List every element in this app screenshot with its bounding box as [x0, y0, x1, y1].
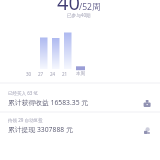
button[interactable]: 已经买入 63 笔 [0, 87, 160, 111]
other: Withdraw detail [141, 126, 153, 138]
staticText: 27 [38, 71, 44, 77]
staticText: 累计获得收益 16583.35 元 [8, 98, 89, 107]
staticText: /52周 [79, 1, 101, 13]
staticText: 待领 29 自动复投 [8, 117, 43, 123]
button[interactable]: 待领 29 自动复投 [0, 114, 160, 138]
staticText: 累计提现 3307888 元 [8, 125, 73, 134]
staticText: 本周 [76, 71, 85, 77]
staticText: 已经买入 63 笔 [8, 90, 38, 96]
staticText: 24 [50, 71, 56, 77]
other: Earnings detail [141, 99, 153, 111]
staticText: 已参与40期 [67, 12, 91, 18]
staticText: 21 [62, 71, 68, 77]
staticText: 30 [26, 71, 32, 77]
staticText: 40 [57, 0, 80, 16]
